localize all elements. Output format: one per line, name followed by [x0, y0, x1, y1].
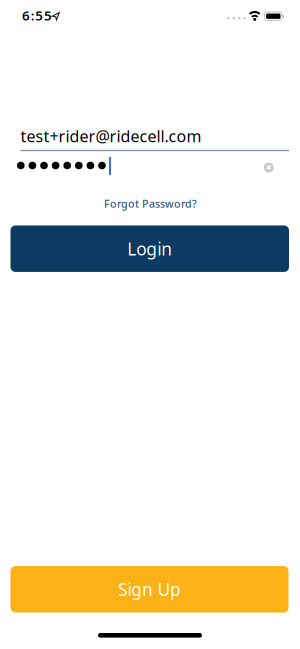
button[interactable]: Sign Up	[10, 566, 288, 612]
button[interactable]: Login	[10, 225, 289, 272]
staticText: 6:55	[22, 6, 52, 24]
staticText: test+rider@ridecell.com	[20, 125, 201, 147]
button[interactable]	[10, 152, 290, 182]
button[interactable]: Forgot Password?	[104, 196, 197, 211]
staticText: Sign Up	[118, 578, 181, 601]
button[interactable]: test+rider@ridecell.com	[10, 116, 290, 152]
button[interactable]	[263, 161, 275, 173]
staticText: Forgot Password?	[104, 196, 197, 211]
staticText: Login	[127, 237, 172, 260]
